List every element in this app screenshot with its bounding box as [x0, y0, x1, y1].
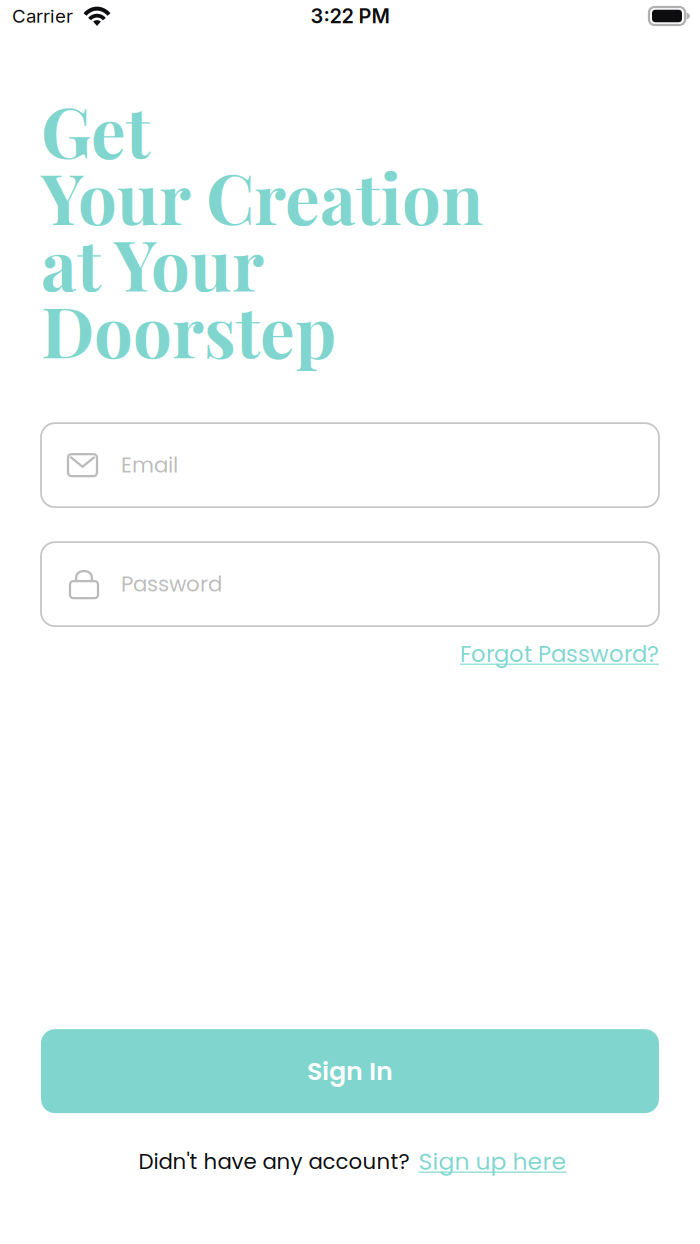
staticText: at Your — [41, 217, 264, 309]
staticText: Forgot Password? — [460, 638, 659, 670]
staticText: Sign In — [307, 1053, 393, 1089]
staticText: 3:22 PM — [310, 4, 389, 28]
button[interactable]: Sign In — [41, 1029, 659, 1113]
staticText: Carrier — [12, 5, 73, 27]
staticText: Doorstep — [41, 284, 336, 375]
staticText: Get — [41, 84, 150, 175]
staticText: Your Creation — [41, 150, 483, 242]
button[interactable]: Sign up here — [418, 1145, 566, 1178]
staticText: Password — [121, 569, 222, 599]
staticText: Sign up here — [418, 1145, 566, 1178]
staticText: Didn't have any account? — [138, 1147, 409, 1176]
button[interactable]: Forgot Password? — [460, 638, 659, 670]
button[interactable]: Password — [41, 542, 659, 626]
button[interactable]: Email — [41, 423, 659, 507]
staticText: Email — [121, 450, 178, 480]
